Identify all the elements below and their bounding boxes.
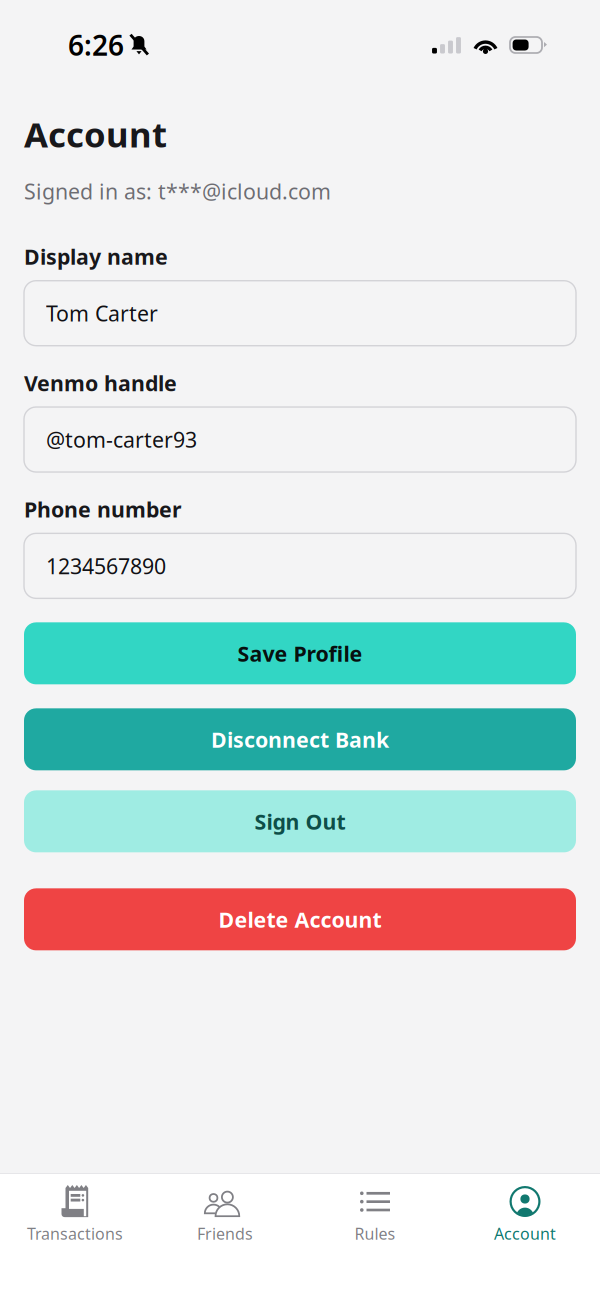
button[interactable]: Sign Out [24, 790, 576, 852]
staticText: Friends [197, 1223, 253, 1244]
staticText: Disconnect Bank [211, 725, 389, 753]
staticText: 1234567890 [46, 552, 166, 580]
button[interactable]: Friends [150, 1174, 300, 1299]
staticText: Transactions [27, 1223, 123, 1244]
staticText: Delete Account [218, 905, 381, 933]
staticText: Tom Carter [46, 299, 158, 327]
button[interactable]: Transactions [0, 1174, 150, 1299]
staticText: Account [494, 1223, 556, 1244]
staticText: Venmo handle [24, 369, 177, 397]
button[interactable]: Disconnect Bank [24, 708, 576, 770]
staticText: Account [24, 111, 167, 157]
staticText: Sign Out [254, 807, 345, 835]
button[interactable]: Save Profile [24, 622, 576, 684]
staticText: Signed in as: t***@icloud.com [24, 177, 331, 205]
button[interactable]: Rules [300, 1174, 450, 1299]
staticText: Display name [24, 242, 168, 271]
button[interactable]: Delete Account [24, 888, 576, 950]
staticText: @tom-carter93 [46, 425, 197, 454]
staticText: Phone number [24, 495, 182, 523]
button[interactable]: Account [450, 1174, 600, 1299]
staticText: Save Profile [237, 639, 362, 667]
staticText: 6:26 [68, 26, 124, 64]
staticText: Rules [354, 1223, 395, 1244]
